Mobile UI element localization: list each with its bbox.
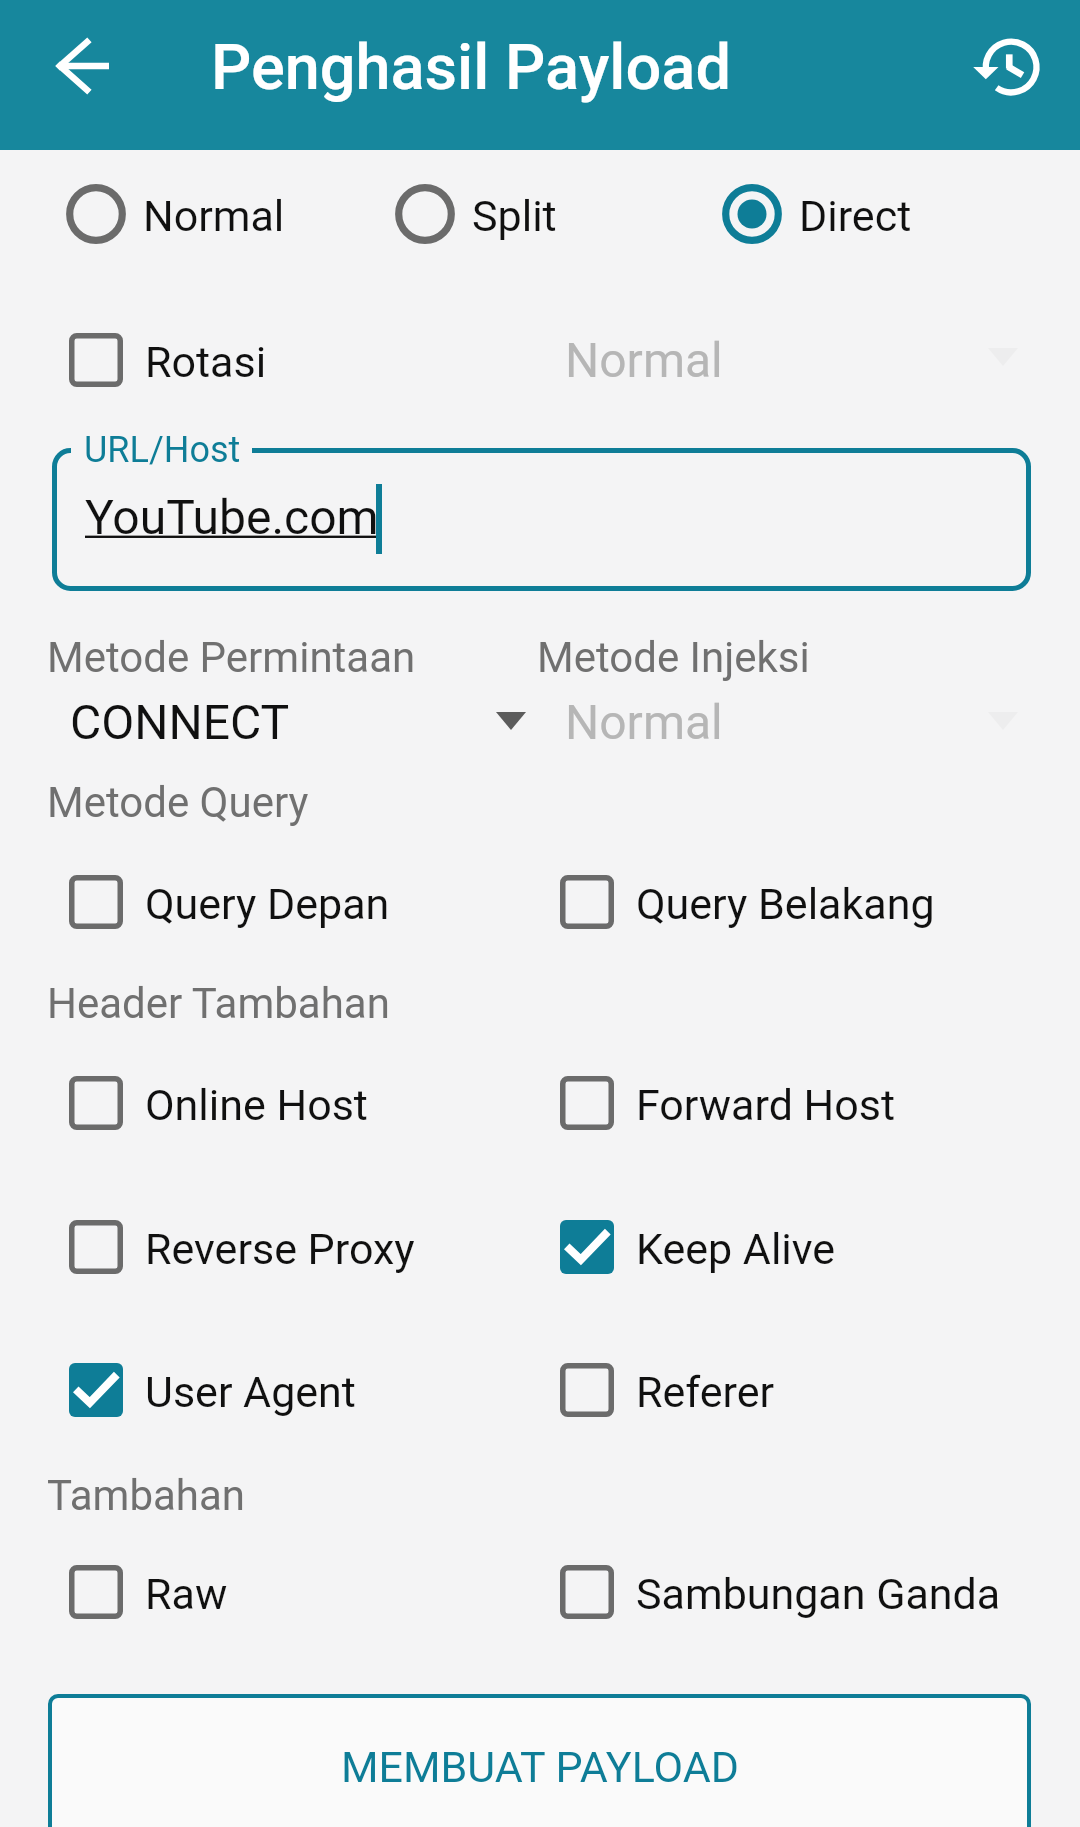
staticText: Normal	[143, 191, 285, 241]
staticText: YouTube.com	[85, 489, 379, 545]
staticText: Forward Host	[636, 1080, 896, 1130]
staticText: Query Belakang	[636, 879, 935, 929]
staticText: Normal	[565, 332, 723, 388]
staticText: Keep Alive	[636, 1224, 836, 1274]
staticText: Penghasil Payload	[211, 31, 731, 105]
staticText: User Agent	[145, 1367, 356, 1417]
button[interactable]: Referer	[559, 1346, 775, 1434]
button[interactable]: User Agent	[68, 1346, 356, 1434]
button[interactable]: Raw	[68, 1548, 228, 1636]
button[interactable]: Sambungan Ganda	[559, 1548, 1001, 1636]
button[interactable]: Reverse Proxy	[68, 1203, 415, 1291]
staticText: Tambahan	[47, 1471, 246, 1520]
button[interactable]: Query Belakang	[559, 858, 935, 946]
staticText: Metode Query	[47, 778, 309, 827]
staticText: MEMBUAT PAYLOAD	[341, 1742, 739, 1792]
button[interactable]: History	[948, 7, 1068, 127]
button[interactable]: Forward Host	[559, 1059, 896, 1147]
button[interactable]: Navigate back	[42, 23, 128, 109]
button[interactable]: MEMBUAT PAYLOAD	[48, 1694, 1031, 1827]
button[interactable]: Keep Alive	[559, 1203, 836, 1291]
staticText: CONNECT	[70, 694, 290, 750]
staticText: URL/Host	[84, 429, 241, 471]
staticText: Rotasi	[145, 337, 267, 387]
button[interactable]: Query Depan	[68, 858, 390, 946]
button[interactable]: Normal	[560, 318, 1020, 402]
staticText: Direct	[799, 191, 912, 241]
staticText: Header Tambahan	[47, 979, 390, 1028]
button[interactable]: Rotasi	[68, 316, 267, 404]
button[interactable]: Split	[394, 170, 557, 258]
staticText: Normal	[565, 694, 723, 750]
staticText: Query Depan	[145, 879, 390, 929]
staticText: Referer	[636, 1367, 775, 1417]
staticText: Sambungan Ganda	[636, 1569, 1001, 1619]
staticText: Metode Permintaan	[47, 633, 416, 682]
staticText: Split	[472, 191, 557, 241]
button[interactable]: Normal	[65, 170, 285, 258]
staticText: Online Host	[145, 1080, 368, 1130]
staticText: Metode Injeksi	[537, 633, 810, 682]
staticText: Reverse Proxy	[145, 1224, 415, 1274]
button[interactable]: Online Host	[68, 1059, 368, 1147]
staticText: Raw	[145, 1569, 228, 1619]
button[interactable]: Direct	[721, 170, 912, 258]
